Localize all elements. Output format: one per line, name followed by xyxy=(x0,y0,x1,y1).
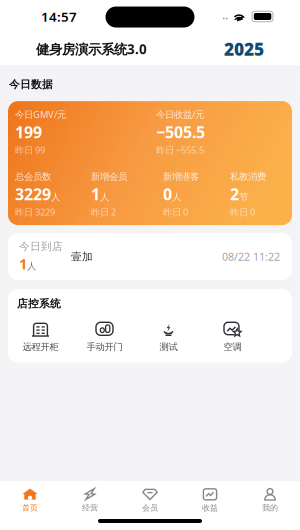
button[interactable]: 今日到店 xyxy=(8,233,292,280)
button[interactable]: 测试 xyxy=(136,320,200,353)
staticText: 1 xyxy=(91,183,100,205)
staticText: 0 xyxy=(163,183,172,205)
button[interactable]: 远程开柜 xyxy=(8,320,72,353)
staticText: 2025 xyxy=(224,37,264,60)
staticText: 人 xyxy=(172,191,181,203)
staticText: 远程开柜 xyxy=(22,341,58,353)
staticText: 昨日 2 xyxy=(91,206,116,218)
staticText: 我的 xyxy=(262,503,278,513)
staticText: 会员 xyxy=(142,503,158,513)
staticText: 新增会员 xyxy=(91,171,127,182)
staticText: 手动开门 xyxy=(86,341,122,353)
button[interactable]: 经营 xyxy=(60,488,120,513)
staticText: 今日收益/元 xyxy=(156,108,204,120)
staticText: 14:57 xyxy=(41,8,77,25)
button[interactable]: 首页 xyxy=(0,488,60,513)
staticText: 新增潜客 xyxy=(163,171,199,182)
button[interactable]: 空调 xyxy=(200,320,264,353)
staticText: 健身房演示系统3.0 xyxy=(36,40,147,58)
staticText: 人 xyxy=(51,191,60,203)
staticText: 收益 xyxy=(202,503,218,513)
staticText: 昨日 0 xyxy=(163,206,188,218)
staticText: 私教消费 xyxy=(230,171,266,182)
staticText: 199 xyxy=(15,121,42,143)
staticText: 空调 xyxy=(223,341,241,353)
button[interactable]: 收益 xyxy=(180,488,240,513)
staticText: 经营 xyxy=(82,503,98,513)
staticText: 1 xyxy=(19,254,27,273)
staticText: 今日到店 xyxy=(19,240,63,253)
button[interactable]: 我的 xyxy=(240,488,300,513)
staticText: 人 xyxy=(100,191,109,203)
staticText: 首页 xyxy=(22,503,38,513)
staticText: 总会员数 xyxy=(15,171,51,182)
staticText: 测试 xyxy=(159,341,177,353)
staticText: 今日GMV/元 xyxy=(15,108,66,120)
staticText: 人 xyxy=(27,260,36,272)
staticText: 08/22 11:22 xyxy=(222,249,280,264)
staticText: 今日数据 xyxy=(9,78,53,91)
button[interactable]: 会员 xyxy=(120,488,180,513)
staticText: 店控系统 xyxy=(17,297,61,310)
staticText: 节 xyxy=(239,191,248,203)
staticText: 昨日 3229 xyxy=(15,206,55,218)
staticText: 3229 xyxy=(15,183,51,205)
staticText: 昨日 −555.5 xyxy=(156,144,204,156)
staticText: 昨日 0 xyxy=(230,206,255,218)
staticText: 昨日 99 xyxy=(15,144,45,156)
staticText: 壹加 xyxy=(71,250,93,263)
staticText: −505.5 xyxy=(156,121,205,143)
staticText: 2 xyxy=(230,183,239,205)
button[interactable]: 手动开门 xyxy=(72,320,136,353)
